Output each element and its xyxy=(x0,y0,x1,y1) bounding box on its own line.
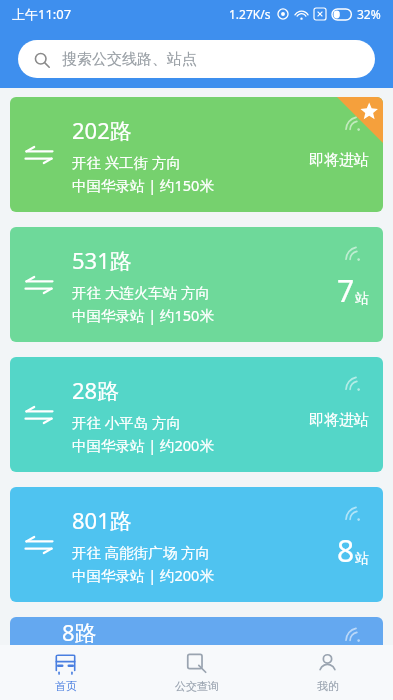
staticText: 中国华录站 | 约150米 xyxy=(72,175,214,195)
button[interactable]: 8路 xyxy=(10,617,383,645)
staticText: 中国华录站 | 约150米 xyxy=(72,305,214,325)
staticText: 公交查询 xyxy=(175,679,219,693)
staticText: 28路 xyxy=(72,375,120,405)
staticText: 8路 xyxy=(62,617,97,645)
staticText: 中国华录站 | 约200米 xyxy=(72,565,214,585)
button[interactable]: 202路 xyxy=(10,97,383,212)
staticText: 上午11:07 xyxy=(12,5,72,23)
staticText: 1.27K/s xyxy=(229,6,271,22)
button[interactable]: 公交查询 xyxy=(131,645,262,700)
staticText: 站 xyxy=(355,550,369,568)
staticText: 首页 xyxy=(55,679,77,693)
staticText: 7 xyxy=(337,270,355,311)
staticText: 即将进站 xyxy=(309,151,369,170)
staticText: 即将进站 xyxy=(309,411,369,430)
staticText: 站 xyxy=(355,290,369,308)
staticText: 开往 高能街广场 方向 xyxy=(72,542,211,562)
button[interactable]: 搜索公交线路、站点 xyxy=(18,40,375,78)
staticText: 开往 小平岛 方向 xyxy=(72,412,182,432)
button[interactable]: 我的 xyxy=(262,645,393,700)
staticText: 开往 大连火车站 方向 xyxy=(72,282,211,302)
staticText: 开往 兴工街 方向 xyxy=(72,152,182,172)
staticText: 32% xyxy=(357,6,381,22)
staticText: 202路 xyxy=(72,115,132,145)
staticText: 801路 xyxy=(72,505,132,535)
button[interactable]: 801路 xyxy=(10,487,383,602)
staticText: 我的 xyxy=(317,679,339,693)
button[interactable]: 28路 xyxy=(10,357,383,472)
button[interactable]: 首页 xyxy=(0,645,131,700)
button[interactable]: 531路 xyxy=(10,227,383,342)
staticText: 531路 xyxy=(72,245,132,275)
staticText: 8 xyxy=(337,530,355,571)
staticText: 搜索公交线路、站点 xyxy=(62,50,197,69)
staticText: 中国华录站 | 约200米 xyxy=(72,435,214,455)
